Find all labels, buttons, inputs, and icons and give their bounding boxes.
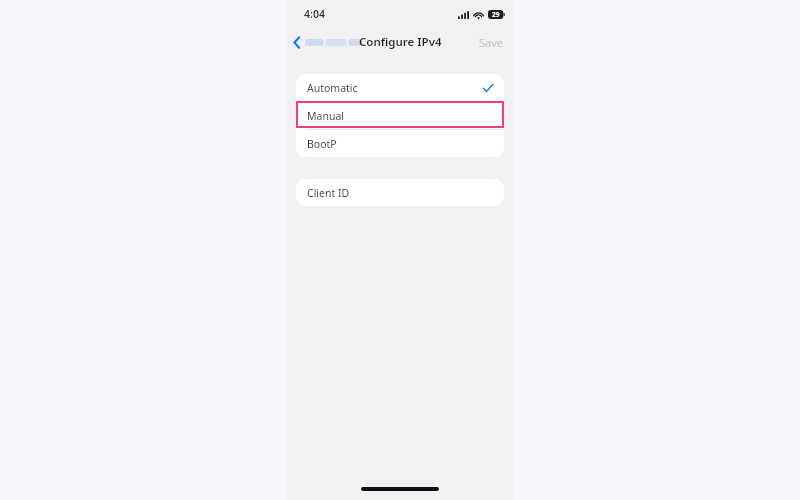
button[interactable]: Back <box>290 32 370 53</box>
button[interactable]: BootP <box>296 130 504 157</box>
staticText: Save <box>479 35 504 50</box>
staticText: Configure IPv4 <box>359 34 442 50</box>
staticText: 4:04 <box>304 7 325 21</box>
button[interactable]: Save <box>469 30 514 55</box>
button[interactable]: Manual <box>296 102 504 129</box>
staticText: 29 <box>492 10 500 19</box>
staticText: Automatic <box>307 81 358 95</box>
staticText: BootP <box>307 137 337 151</box>
button[interactable]: Client ID <box>296 179 504 206</box>
staticText: Client ID <box>307 186 350 200</box>
button[interactable]: Automatic <box>296 74 504 101</box>
staticText: Manual <box>307 109 344 123</box>
